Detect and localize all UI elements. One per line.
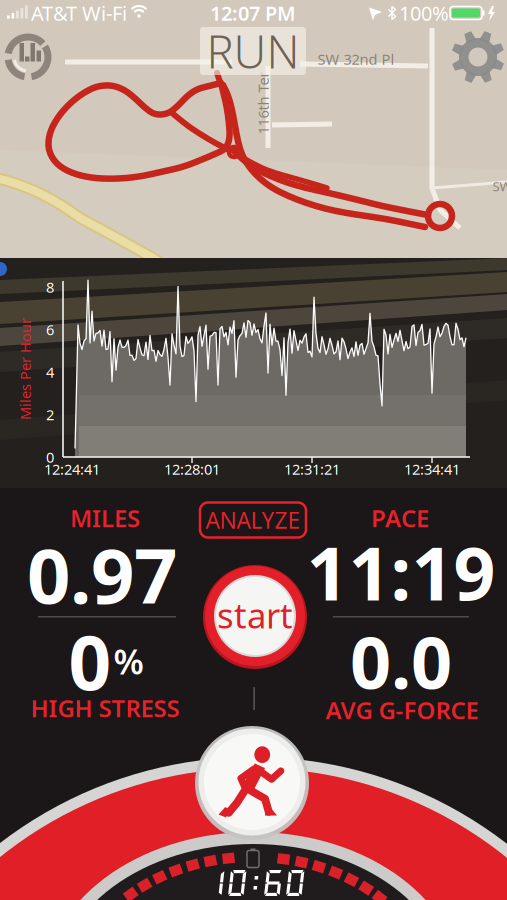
- staticText: SW: [492, 177, 507, 195]
- staticText: RUN: [206, 21, 299, 81]
- staticText: 100%: [399, 0, 449, 26]
- staticText: ANALYZE: [205, 505, 300, 535]
- staticText: 0.0: [350, 613, 452, 709]
- staticText: 0: [46, 447, 54, 467]
- staticText: 11:19: [306, 523, 495, 621]
- staticText: 4: [46, 362, 54, 382]
- staticText: %: [113, 638, 143, 684]
- staticText: 12:34:41: [404, 459, 460, 479]
- staticText: 116th Ter: [231, 93, 294, 113]
- staticText: SW 32nd Pl: [317, 49, 394, 69]
- staticText: 12:31:21: [284, 459, 340, 479]
- staticText: HIGH STRESS: [30, 692, 179, 724]
- staticText: 12:28:01: [164, 459, 220, 479]
- button[interactable]: start: [203, 565, 307, 669]
- button[interactable]: Statistics: [4, 33, 52, 81]
- staticText: 0.97: [27, 523, 177, 624]
- staticText: AVG G-FORCE: [325, 694, 478, 726]
- staticText: 8: [46, 277, 54, 297]
- staticText: PACE: [371, 502, 429, 534]
- staticText: 12:07 PM: [210, 0, 296, 26]
- button[interactable]: Settings: [450, 29, 506, 85]
- staticText: MILES: [70, 502, 140, 534]
- staticText: 6: [46, 320, 54, 339]
- staticText: 0: [68, 611, 111, 711]
- button[interactable]: ANALYZE: [200, 502, 306, 537]
- staticText: Miles Per Hour: [0, 359, 76, 379]
- staticText: AT&T Wi-Fi: [31, 0, 127, 26]
- staticText: start: [217, 592, 293, 638]
- button[interactable]: RUN: [200, 27, 306, 75]
- staticText: 2: [46, 405, 54, 424]
- staticText: 12:24:41: [44, 459, 100, 479]
